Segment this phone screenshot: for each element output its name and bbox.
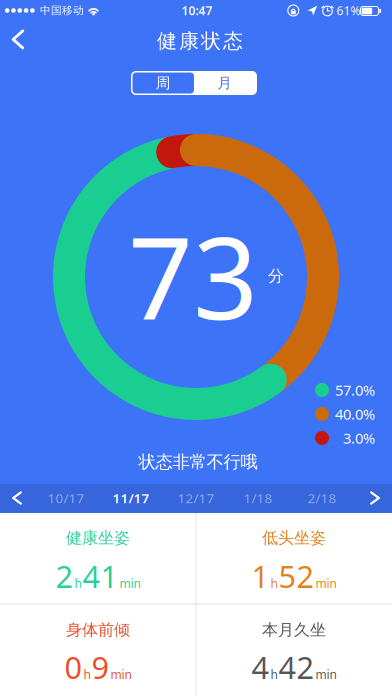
button[interactable]: 12/17 — [171, 483, 220, 513]
staticText: min — [119, 575, 140, 591]
staticText: 3.0% — [343, 428, 375, 448]
staticText: 低头坐姿 — [262, 528, 326, 548]
button[interactable]: Previous — [6, 485, 28, 511]
button[interactable]: 月 — [194, 72, 255, 93]
button[interactable]: 1/18 — [237, 483, 278, 513]
staticText: h — [83, 666, 90, 682]
staticText: 周 — [156, 74, 171, 92]
staticText: 10/17 — [47, 489, 84, 507]
staticText: 40.0% — [335, 404, 375, 424]
button[interactable]: 周 — [132, 72, 194, 93]
button[interactable]: Back — [4, 23, 32, 55]
staticText: 12/17 — [177, 489, 214, 507]
staticText: 57.0% — [335, 380, 375, 400]
staticText: 61% — [336, 2, 360, 18]
staticText: 0 — [64, 647, 82, 687]
button[interactable]: Next — [364, 485, 386, 511]
staticText: 分 — [268, 266, 284, 286]
staticText: 41 — [82, 556, 118, 596]
staticText: 本月久坐 — [262, 620, 326, 640]
staticText: 52 — [278, 556, 314, 596]
staticText: 状态非常不行哦 — [138, 451, 257, 473]
staticText: 10:47 — [181, 2, 212, 18]
staticText: h — [270, 575, 277, 591]
button[interactable]: 11/17 — [106, 483, 155, 513]
staticText: 身体前倾 — [66, 620, 130, 640]
button[interactable]: 10/17 — [41, 483, 90, 513]
staticText: 9 — [91, 647, 109, 687]
staticText: h — [270, 666, 277, 682]
staticText: min — [110, 666, 131, 682]
button[interactable]: 2/18 — [301, 483, 342, 513]
staticText: 4 — [251, 647, 269, 687]
staticText: 42 — [278, 647, 314, 687]
staticText: 11/17 — [112, 489, 149, 507]
staticText: 73 — [128, 200, 258, 351]
staticText: min — [315, 666, 336, 682]
staticText: 1 — [251, 556, 269, 596]
staticText: 2/18 — [307, 489, 336, 507]
staticText: 中国移动 — [40, 4, 84, 17]
staticText: 2 — [55, 556, 73, 596]
staticText: 1/18 — [243, 489, 272, 507]
staticText: min — [315, 575, 336, 591]
staticText: 月 — [217, 74, 232, 92]
staticText: 健康坐姿 — [66, 528, 130, 548]
staticText: h — [74, 575, 81, 591]
staticText: 健康状态 — [157, 29, 243, 53]
